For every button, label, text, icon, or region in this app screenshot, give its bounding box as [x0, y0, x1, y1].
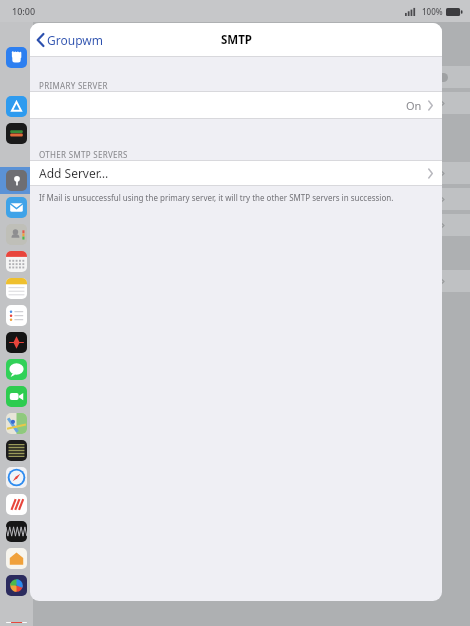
staticText: Groupwm [47, 32, 103, 48]
staticText: PRIMARY SERVER [39, 80, 108, 91]
staticText: 100% [422, 6, 443, 17]
staticText: If Mail is unsuccessful using the primar… [39, 192, 394, 203]
staticText: Password & Accounts [194, 34, 309, 49]
button[interactable]: On [30, 92, 442, 118]
staticText: 10:00 [12, 5, 36, 17]
staticText: On [406, 98, 422, 113]
staticText: Add Server… [39, 165, 109, 181]
staticText: SMTP [221, 32, 252, 48]
button[interactable]: Groupwm [30, 23, 111, 56]
button[interactable]: Add Server… [30, 161, 442, 185]
staticText: OTHER SMTP SERVERS [39, 149, 128, 160]
